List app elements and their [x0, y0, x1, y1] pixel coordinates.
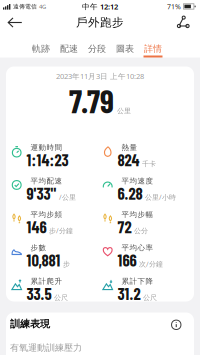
staticText: 166 [117, 250, 136, 270]
staticText: 平均速度 [121, 176, 153, 186]
staticText: 146 [26, 217, 46, 236]
staticText: 72 [117, 217, 131, 236]
staticText: 累計下降 [121, 276, 153, 286]
staticText: 圖表 [116, 43, 134, 54]
button[interactable]: 軌跡分享 [175, 15, 200, 30]
staticText: 累計爬升 [30, 276, 62, 286]
staticText: 71% [167, 2, 181, 11]
staticText: 6.28 [117, 183, 142, 203]
staticText: 中午 12:12 [82, 1, 118, 12]
staticText: 步/分鐘 [49, 226, 73, 235]
staticText: 平均心率 [121, 243, 153, 252]
staticText: 分段 [88, 43, 106, 54]
staticText: 824 [117, 150, 139, 170]
staticText: 2023年11月3日 上午10:28 [56, 71, 144, 81]
staticText: 運動時間 [30, 143, 62, 152]
button[interactable]: 詳情 [143, 43, 162, 57]
staticText: 次/分鐘 [139, 259, 163, 269]
staticText: 熱量 [121, 143, 137, 152]
staticText: 33.5 [26, 283, 51, 303]
staticText: 軌跡 [32, 43, 50, 54]
staticText: 公里/小時 [145, 192, 176, 202]
staticText: 公尺 [54, 293, 68, 302]
staticText: 配速 [60, 43, 78, 54]
staticText: 公里 [117, 106, 131, 115]
staticText: 平均步幅 [121, 210, 153, 219]
button[interactable]: 返回 [0, 13, 26, 32]
staticText: 有氧運動訓練壓力 [10, 342, 82, 353]
staticText: 1:14:23 [26, 150, 68, 170]
staticText: 步數 [30, 243, 46, 252]
staticText: 公尺 [143, 293, 157, 302]
staticText: 詳情 [144, 43, 162, 54]
staticText: 公分 [134, 226, 148, 235]
staticText: 31.2 [117, 283, 140, 303]
staticText: 7.79 [69, 81, 114, 120]
button[interactable]: 訓練表現說明 [171, 317, 181, 330]
button[interactable]: 軌跡 [31, 43, 50, 57]
staticText: 千卡 [142, 160, 156, 168]
staticText: 4G [39, 3, 46, 10]
staticText: 戶外跑步 [76, 15, 124, 30]
staticText: 9'33" [26, 183, 56, 203]
staticText: 步 [63, 260, 70, 269]
staticText: 平均步頻 [30, 210, 62, 219]
staticText: 平均配速 [30, 176, 62, 186]
button[interactable]: 分段 [87, 43, 106, 57]
staticText: /公里 [59, 192, 76, 202]
staticText: 10,881 [26, 250, 60, 270]
staticText: 訓練表現 [10, 317, 50, 330]
button[interactable]: 圖表 [115, 43, 134, 57]
staticText: 遠傳電信 [13, 3, 37, 10]
button[interactable]: 配速 [59, 43, 78, 57]
